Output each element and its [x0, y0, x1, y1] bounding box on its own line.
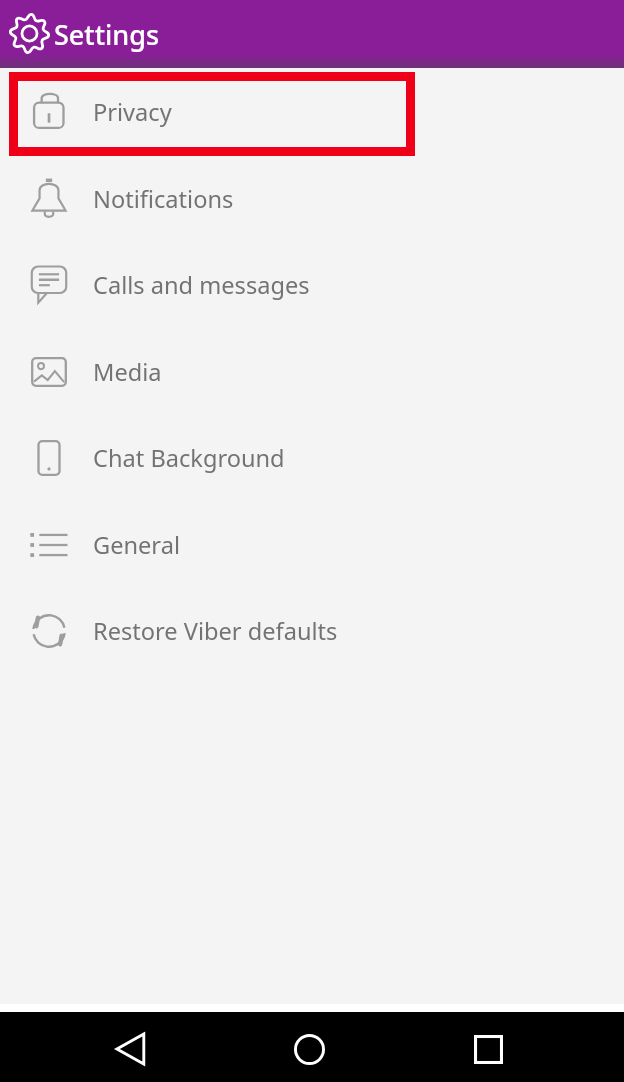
staticText: Privacy	[93, 96, 172, 128]
button[interactable]: Privacy	[0, 69, 624, 155]
staticText: Notifications	[93, 183, 234, 215]
button[interactable]: Restore Viber defaults	[0, 588, 624, 674]
staticText: Restore Viber defaults	[93, 615, 338, 647]
button[interactable]: Media	[0, 329, 624, 415]
button[interactable]: Recents	[457, 1018, 519, 1080]
button[interactable]: Calls and messages	[0, 242, 624, 328]
staticText: Chat Background	[93, 442, 285, 474]
button[interactable]: Back	[100, 1018, 162, 1080]
button[interactable]: General	[0, 502, 624, 588]
staticText: Calls and messages	[93, 269, 310, 301]
button[interactable]: Chat Background	[0, 415, 624, 501]
staticText: General	[93, 529, 180, 561]
button[interactable]: Settings	[0, 0, 54, 68]
staticText: Settings	[54, 16, 160, 53]
staticText: Media	[93, 356, 162, 388]
button[interactable]: Home	[278, 1018, 340, 1080]
button[interactable]: Notifications	[0, 156, 624, 242]
